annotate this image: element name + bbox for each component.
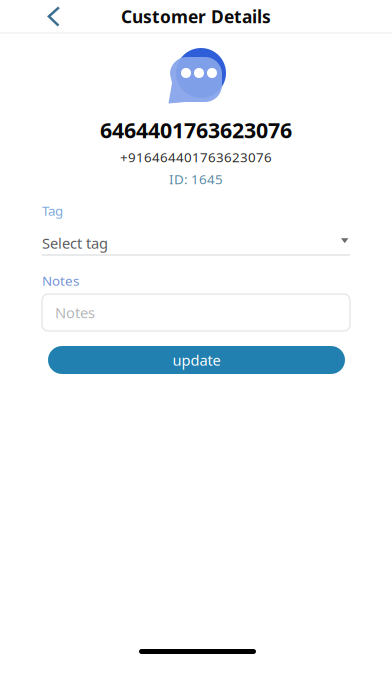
staticText: ID: 1645 [169,170,223,188]
staticText: update [172,350,220,370]
button[interactable]: Select tag [42,232,350,255]
staticText: Notes [42,272,79,289]
staticText: Notes [55,303,95,322]
staticText: Tag [42,202,63,219]
staticText: Customer Details [121,5,271,28]
button[interactable]: Notes [42,294,350,331]
button[interactable]: Back [32,0,76,33]
button[interactable]: update [48,346,345,374]
staticText: Select tag [42,233,108,253]
staticText: 6464401763623076 [100,116,292,144]
staticText: +916464401763623076 [120,148,272,166]
